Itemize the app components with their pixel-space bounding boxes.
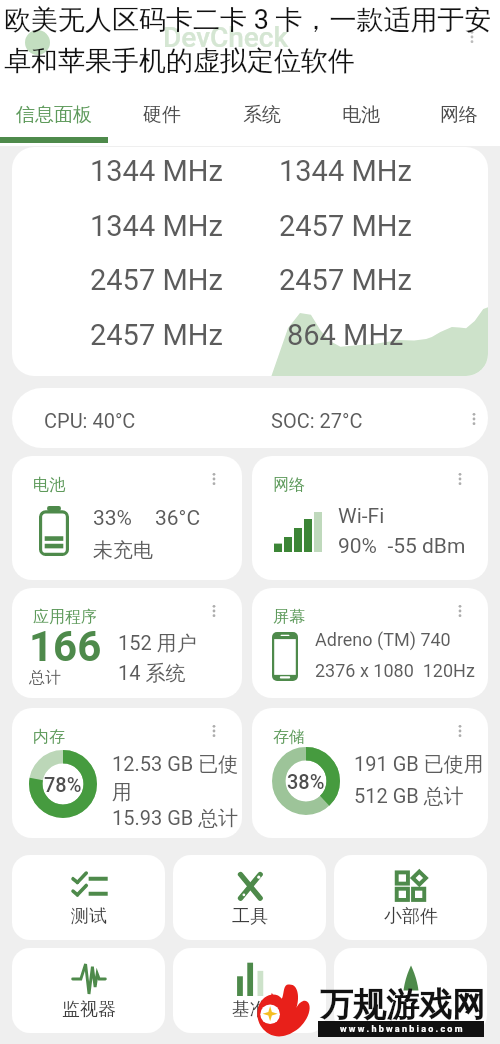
staticText: 33% xyxy=(93,506,132,531)
staticText: 硬件 xyxy=(143,103,181,127)
button[interactable]: 硬件 xyxy=(112,92,212,138)
staticText: 基准 xyxy=(232,998,268,1021)
staticText: 191 GB 已使用 xyxy=(354,752,484,777)
staticText: 内存 xyxy=(33,727,65,747)
staticText: 系统 xyxy=(243,103,281,127)
staticText: 电池 xyxy=(342,103,380,127)
button[interactable]: 网络 xyxy=(411,92,500,138)
button[interactable] xyxy=(334,948,487,1033)
staticText: 2457 MHz xyxy=(90,263,223,297)
button[interactable]: 内存 options xyxy=(204,721,224,741)
staticText: 工具 xyxy=(232,905,268,928)
staticText: w w w . h b w a n b i a o . c o m xyxy=(340,1024,463,1035)
button[interactable]: 系统 xyxy=(212,92,312,138)
staticText: 864 MHz xyxy=(287,318,404,352)
button[interactable]: 电池 options xyxy=(204,469,224,489)
staticText: 78% xyxy=(44,773,82,796)
button[interactable]: 网络 options xyxy=(450,469,470,489)
staticText: DevCheck xyxy=(163,21,289,54)
button[interactable]: CPU: 40°C xyxy=(12,388,488,448)
button[interactable]: 1344 MHz xyxy=(12,147,488,376)
staticText: Adreno (TM) 740 xyxy=(315,629,451,650)
button[interactable]: 网络 xyxy=(252,456,488,580)
staticText: 网络 xyxy=(440,103,478,127)
button[interactable]: 基准 xyxy=(173,948,326,1033)
staticText: 总计 xyxy=(29,668,61,688)
button[interactable]: 内存 xyxy=(12,708,242,838)
staticText: 监视器 xyxy=(62,998,116,1021)
staticText: 2457 MHz xyxy=(279,209,412,243)
staticText: 存储 xyxy=(273,727,305,747)
staticText: 1344 MHz xyxy=(90,154,223,188)
staticText: 36°C xyxy=(155,506,201,531)
staticText: 14 系统 xyxy=(118,661,186,686)
staticText: 90% -55 dBm xyxy=(338,534,466,559)
button[interactable]: 存储 options xyxy=(450,721,470,741)
staticText: 38% xyxy=(287,770,325,793)
button[interactable]: 监视器 xyxy=(12,948,165,1033)
button[interactable]: Temperature options xyxy=(464,409,484,429)
staticText: 166 xyxy=(29,622,102,671)
staticText: 2457 MHz xyxy=(90,318,223,352)
staticText: 万规游戏网 xyxy=(320,984,485,1026)
staticText: 欧美无人区码卡二卡 3 卡，一款适用于安 卓和苹果手机的虚拟定位软件 xyxy=(4,3,500,78)
staticText: 15.93 GB 总计 xyxy=(112,806,239,831)
staticText: 小部件 xyxy=(384,905,438,928)
staticText: 电池 xyxy=(33,475,65,495)
button[interactable]: 存储 xyxy=(252,708,488,838)
staticText: SOC: 27°C xyxy=(271,409,363,432)
button[interactable]: 应用程序 xyxy=(12,588,242,698)
staticText: 12.53 GB 已使 用 xyxy=(112,752,239,805)
staticText: 信息面板 xyxy=(16,103,92,127)
staticText: 1344 MHz xyxy=(90,209,223,243)
button[interactable]: 小部件 xyxy=(334,855,487,940)
button[interactable]: 测试 xyxy=(12,855,165,940)
button[interactable]: 屏幕 xyxy=(252,588,488,698)
staticText: 152 用户 xyxy=(118,631,197,656)
staticText: CPU: 40°C xyxy=(44,409,136,432)
button[interactable]: More options xyxy=(460,25,484,49)
button[interactable]: 屏幕 options xyxy=(450,601,470,621)
staticText: 未充电 xyxy=(93,538,153,563)
button[interactable]: 电池 xyxy=(311,92,411,138)
button[interactable]: 工具 xyxy=(173,855,326,940)
staticText: 测试 xyxy=(71,905,107,928)
staticText: Wi-Fi xyxy=(338,504,385,529)
button[interactable]: 电池 xyxy=(12,456,242,580)
button[interactable]: 应用程序 options xyxy=(204,601,224,621)
staticText: 屏幕 xyxy=(273,607,305,627)
staticText: 应用程序 xyxy=(33,607,97,627)
button[interactable]: 信息面板 xyxy=(0,92,108,138)
staticText: 512 GB 总计 xyxy=(354,784,464,809)
staticText: 网络 xyxy=(273,475,305,495)
staticText: 1344 MHz xyxy=(279,154,412,188)
staticText: 2457 MHz xyxy=(279,263,412,297)
staticText: 2376 x 1080 120Hz xyxy=(315,660,475,681)
